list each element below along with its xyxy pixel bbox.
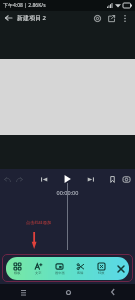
staticText: 新建项目 2 — [17, 14, 46, 22]
staticText: 剪辑 — [77, 271, 84, 275]
button[interactable]: Marker — [105, 172, 119, 186]
staticText: 00:00:00 — [0, 189, 135, 196]
button[interactable]: Fullscreen — [119, 172, 133, 186]
button[interactable]: Settings — [91, 11, 104, 25]
staticText: 下午4:08 | 2.86K/s — [3, 2, 46, 9]
button[interactable]: 文字 — [28, 263, 49, 275]
button[interactable]: Export — [105, 11, 118, 25]
button[interactable]: Back — [105, 284, 121, 300]
button[interactable]: Play — [60, 172, 74, 186]
button[interactable]: Close — [112, 257, 129, 280]
button[interactable]: Undo — [0, 172, 14, 186]
button[interactable]: Back — [2, 11, 15, 25]
staticText: 画中画 — [55, 271, 65, 275]
button[interactable]: 模板 — [6, 263, 28, 275]
button[interactable]: More options — [118, 11, 131, 25]
staticText: 点击此处添加 — [26, 220, 52, 225]
button[interactable]: 画中画 — [49, 263, 70, 275]
button[interactable]: Previous frame — [37, 172, 51, 186]
staticText: 文字 — [35, 271, 42, 275]
button[interactable]: Redo — [12, 172, 26, 186]
button[interactable]: 剪辑 — [70, 263, 91, 275]
button[interactable]: Next frame — [83, 172, 97, 186]
button[interactable]: Recents — [15, 284, 31, 300]
staticText: 模板 — [14, 271, 21, 275]
button[interactable]: 特效 — [91, 263, 112, 275]
staticText: 特效 — [98, 271, 105, 275]
button[interactable]: Home — [60, 284, 76, 300]
